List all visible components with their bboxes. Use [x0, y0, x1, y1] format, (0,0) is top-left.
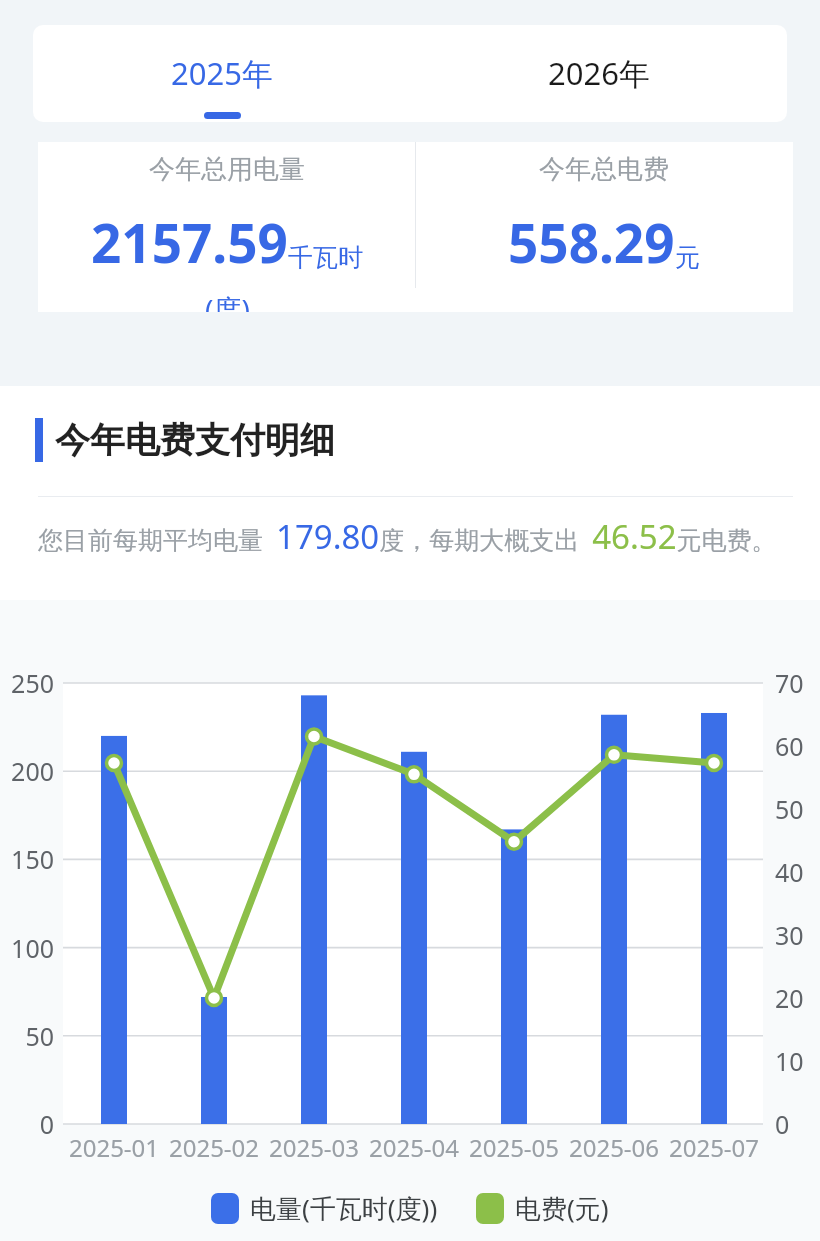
staticText: 20 — [775, 981, 804, 1015]
staticText: 2026年 — [548, 52, 650, 94]
button[interactable]: 今年总用电量 — [38, 142, 415, 312]
button[interactable]: 2025年 — [33, 25, 410, 122]
staticText: 电费(元) — [515, 1190, 609, 1226]
staticText: 0 — [775, 1107, 790, 1141]
staticText: 您目前每期平均电量 179.80度，每期大概支出 46.52元电费。 — [38, 514, 777, 559]
staticText: 2025-06 — [554, 1131, 674, 1164]
staticText: 0 — [0, 1107, 54, 1141]
staticText: 70 — [775, 666, 804, 700]
staticText: 10 — [775, 1044, 804, 1078]
staticText: 今年总电费 — [539, 153, 669, 186]
staticText: 30 — [775, 918, 804, 952]
staticText: 千瓦时 — [288, 242, 363, 273]
staticText: 250 — [0, 666, 54, 700]
staticText: 2025年 — [171, 52, 273, 94]
staticText: (度) — [205, 290, 250, 312]
staticText: 558.29 — [508, 206, 675, 278]
staticText: 元 — [675, 242, 700, 273]
staticText: 今年电费支付明细 — [55, 418, 335, 462]
staticText: 2025-04 — [354, 1131, 474, 1164]
staticText: 200 — [0, 754, 54, 788]
staticText: 2025-01 — [54, 1131, 174, 1164]
staticText: 2025-02 — [154, 1131, 274, 1164]
staticText: 2025-05 — [454, 1131, 574, 1164]
staticText: 100 — [0, 931, 54, 965]
staticText: 2157.59 — [91, 206, 288, 278]
staticText: 60 — [775, 729, 804, 763]
staticText: 50 — [775, 792, 804, 826]
staticText: 2025-03 — [254, 1131, 374, 1164]
button[interactable]: 2026年 — [410, 25, 787, 122]
button[interactable]: 电量(千瓦时(度)) — [211, 1190, 438, 1226]
staticText: 40 — [775, 855, 804, 889]
staticText: 电量(千瓦时(度)) — [250, 1190, 438, 1226]
button[interactable]: 电费(元) — [476, 1190, 609, 1226]
staticText: 2025-07 — [654, 1131, 774, 1164]
staticText: 50 — [0, 1019, 54, 1053]
button[interactable]: 今年总电费 — [415, 142, 793, 312]
staticText: 今年总用电量 — [149, 153, 305, 186]
staticText: 150 — [0, 842, 54, 876]
